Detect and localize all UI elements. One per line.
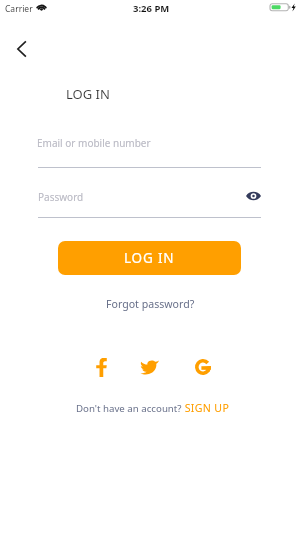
- button[interactable]: Don't have an account? SIGN UP: [70, 397, 236, 419]
- staticText: Forgot password?: [106, 297, 195, 311]
- staticText: Carrier: [5, 3, 33, 15]
- button[interactable]: Sign in with Facebook: [84, 350, 118, 384]
- staticText: Don't have an account? SIGN UP: [76, 401, 230, 415]
- staticText: LOG IN: [124, 249, 175, 267]
- staticText: Email or mobile number: [37, 136, 151, 150]
- button[interactable]: LOG IN: [58, 241, 241, 275]
- button[interactable]: Sign in with Google: [186, 350, 220, 384]
- button[interactable]: Sign in with Twitter: [133, 350, 167, 384]
- staticText: Password: [38, 190, 84, 204]
- button[interactable]: Forgot password?: [100, 292, 201, 316]
- staticText: 3:26 PM: [133, 2, 170, 15]
- button[interactable]: Show password: [242, 185, 264, 207]
- staticText: LOG IN: [66, 85, 110, 103]
- button[interactable]: Back: [6, 34, 36, 64]
